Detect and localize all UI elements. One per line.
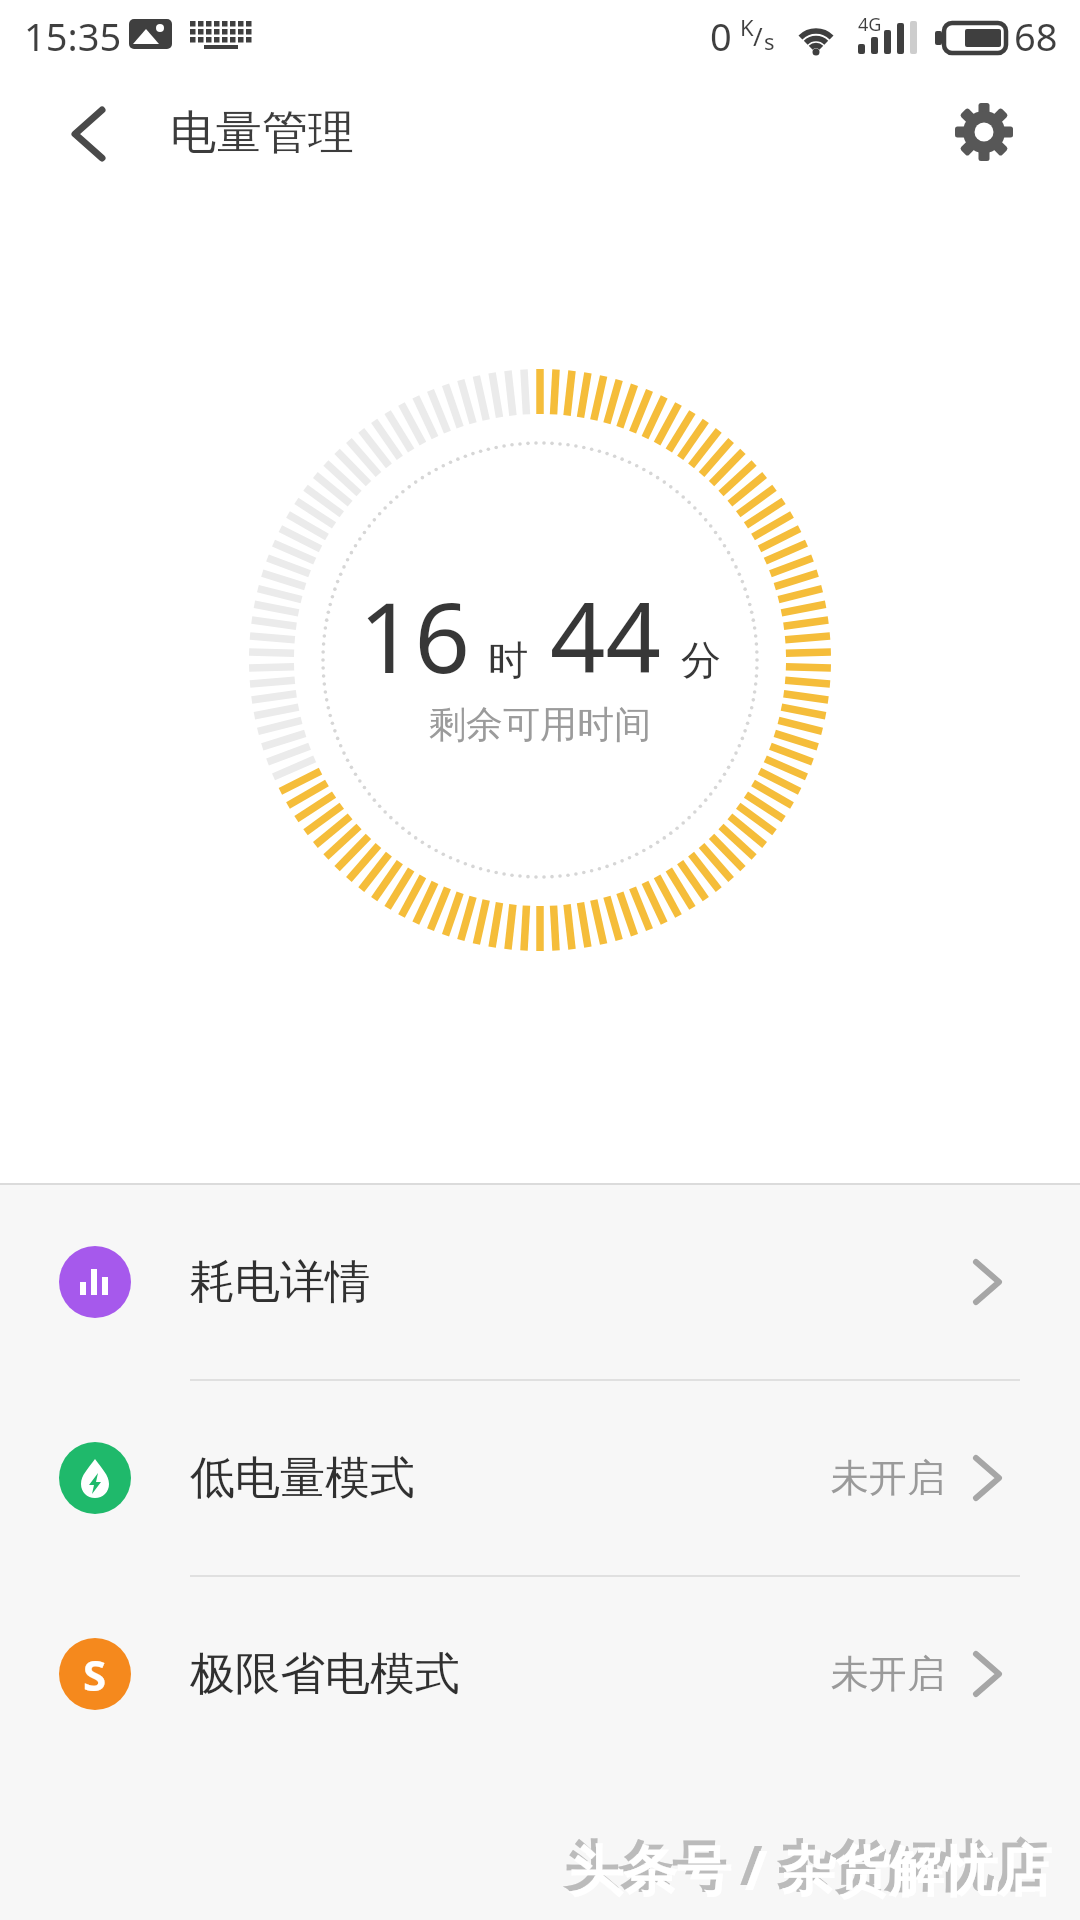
staticText: 耗电详情 [190,1254,370,1311]
staticText: 时 [488,635,528,685]
button[interactable]: 低电量模式 [0,1381,1080,1575]
staticText: 4G [858,12,882,37]
staticText: K [740,12,754,42]
staticText: 剩余可用时间 [429,701,651,748]
button[interactable]: S [0,1577,1080,1771]
staticText: 0 [710,10,732,62]
staticText: 未开启 [831,1650,945,1698]
button[interactable]: 耗电详情 [0,1185,1080,1379]
staticText: 头条号 / 杂货解忧店 [564,1827,1047,1901]
staticText: 16 [359,569,470,701]
staticText: s [764,26,775,56]
staticText: 极限省电模式 [190,1646,460,1703]
button[interactable] [944,92,1024,172]
staticText: 68 [1014,10,1058,62]
button[interactable] [52,94,124,174]
staticText: / [753,18,763,53]
staticText: 分 [681,635,721,685]
staticText: 44 [550,569,661,701]
staticText: 电量管理 [170,104,354,162]
staticText: 15:35 [24,10,122,62]
staticText: 头条号 / 杂货解忧店 [569,1832,1052,1906]
staticText: S [83,1646,107,1703]
staticText: 低电量模式 [190,1450,415,1507]
staticText: 未开启 [831,1454,945,1502]
